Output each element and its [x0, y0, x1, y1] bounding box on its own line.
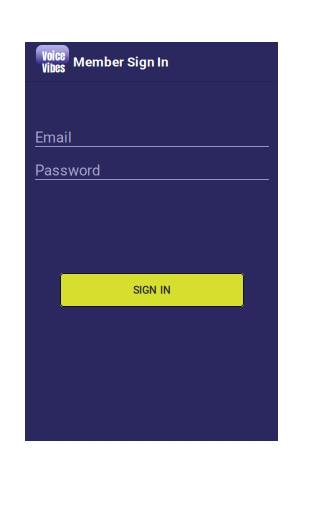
button[interactable]: SIGN IN [60, 273, 244, 307]
staticText: Member Sign In [73, 54, 168, 70]
staticText: SIGN IN [133, 284, 171, 296]
staticText: Vibes [42, 60, 65, 76]
staticText: Email [35, 129, 72, 146]
staticText: Voice [42, 48, 65, 64]
staticText: Password [35, 162, 100, 179]
